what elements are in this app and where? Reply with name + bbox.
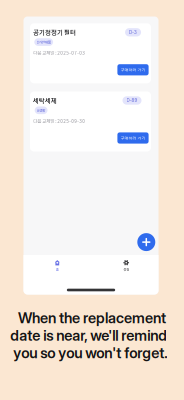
button[interactable]: 구매하러 가기 (117, 132, 149, 144)
button[interactable]: 설정 (112, 259, 140, 272)
staticText: D-89 (126, 98, 137, 103)
staticText: 세탁세제 (33, 95, 57, 105)
staticText: 구매하러 가기 (120, 135, 145, 141)
staticText: #가전제품 (37, 39, 51, 45)
staticText: #생활 (37, 108, 45, 113)
staticText: 공기청정기 필터 (33, 27, 76, 37)
staticText: D-3 (129, 30, 137, 35)
button[interactable]: 구매하러 가기 (117, 64, 149, 75)
staticText: 홈 (56, 267, 59, 272)
staticText: 구매하러 가기 (120, 67, 145, 73)
staticText: date is near, we'll remind (10, 327, 167, 344)
button[interactable]: Add item (137, 233, 155, 251)
staticText: 설정 (123, 267, 129, 272)
staticText: When the replacement (18, 309, 166, 327)
button[interactable]: 홈 (43, 259, 71, 272)
staticText: you so you won't forget. (13, 344, 167, 362)
staticText: 다음 교체일 : 2025-07-03 (33, 49, 85, 56)
staticText: 다음 교체일 : 2025-09-30 (33, 118, 85, 124)
